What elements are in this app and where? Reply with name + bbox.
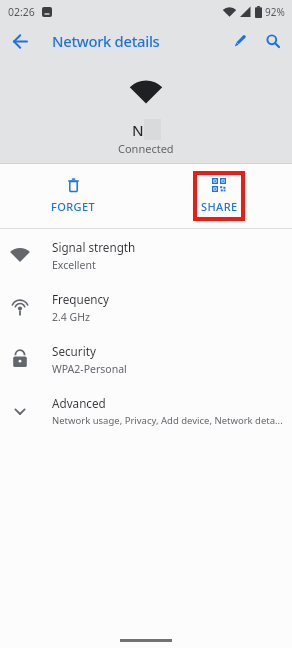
staticText: Signal strength [52, 239, 136, 255]
staticText: Advanced [52, 395, 106, 411]
staticText: Connected [118, 141, 174, 156]
staticText: Security [52, 343, 96, 359]
button[interactable]: Advanced [0, 385, 292, 437]
staticText: N [132, 120, 144, 140]
button[interactable]: FORGET [0, 164, 146, 228]
staticText: Frequency [52, 291, 110, 307]
staticText: 92% [265, 5, 285, 19]
staticText: Excellent [52, 258, 96, 272]
staticText: 2.4 GHz [52, 310, 90, 324]
button[interactable]: Security [0, 333, 292, 385]
staticText: FORGET [51, 199, 96, 214]
button[interactable] [261, 29, 285, 53]
staticText: Network usage, Privacy, Add device, Netw… [52, 414, 283, 427]
button[interactable] [228, 29, 252, 53]
button[interactable] [8, 29, 32, 53]
button[interactable]: Frequency [0, 281, 292, 333]
button[interactable]: Signal strength [0, 229, 292, 281]
staticText: Network details [52, 31, 160, 51]
staticText: WPA2-Personal [52, 362, 127, 376]
button[interactable]: SHARE [146, 164, 292, 228]
staticText: 02:26 [8, 5, 35, 19]
staticText: SHARE [201, 199, 238, 214]
